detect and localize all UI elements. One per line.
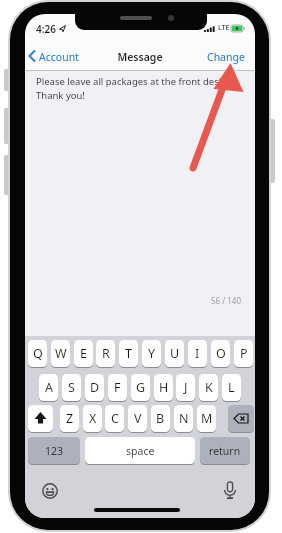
staticText: Q: [33, 345, 43, 362]
staticText: Message: [25, 50, 255, 64]
staticText: P: [240, 345, 248, 362]
button[interactable]: Z: [60, 405, 79, 432]
button[interactable]: A: [39, 374, 58, 401]
staticText: D: [90, 379, 100, 396]
button[interactable]: J: [176, 374, 195, 401]
button[interactable]: E: [74, 340, 93, 367]
button[interactable]: D: [85, 374, 104, 401]
staticText: C: [111, 410, 119, 427]
staticText: Y: [148, 345, 156, 362]
staticText: Z: [66, 410, 74, 427]
button[interactable]: C: [105, 405, 124, 432]
button[interactable]: 123: [28, 437, 80, 464]
button[interactable]: space: [85, 437, 195, 464]
button[interactable]: G: [131, 374, 150, 401]
button[interactable]: K: [199, 374, 218, 401]
staticText: U: [170, 345, 180, 362]
staticText: A: [45, 379, 53, 396]
button[interactable]: N: [174, 405, 193, 432]
button[interactable]: U: [165, 340, 184, 367]
button[interactable]: W: [51, 340, 70, 367]
button[interactable]: P: [234, 340, 253, 367]
staticText: J: [184, 379, 188, 396]
staticText: L: [228, 379, 235, 396]
button[interactable]: H: [154, 374, 173, 401]
staticText: M: [201, 410, 213, 427]
button[interactable]: Y: [142, 340, 161, 367]
button[interactable]: return: [200, 437, 250, 464]
button[interactable]: B: [151, 405, 170, 432]
staticText: X: [89, 410, 97, 427]
button[interactable]: F: [108, 374, 127, 401]
staticText: 4:26: [36, 22, 56, 36]
button[interactable]: [28, 50, 36, 62]
button[interactable]: R: [96, 340, 115, 367]
staticText: 56 / 140: [171, 295, 241, 306]
button[interactable]: [42, 483, 58, 499]
button[interactable]: I: [188, 340, 207, 367]
button[interactable]: Change: [207, 50, 245, 64]
button[interactable]: Account: [39, 50, 79, 64]
staticText: R: [102, 345, 110, 362]
staticText: Please leave all packages at the front d…: [36, 75, 227, 102]
button[interactable]: X: [83, 405, 102, 432]
button[interactable]: O: [211, 340, 230, 367]
staticText: V: [134, 410, 142, 427]
button[interactable]: [228, 405, 254, 432]
staticText: G: [136, 379, 146, 396]
staticText: E: [80, 345, 87, 362]
staticText: K: [205, 379, 213, 396]
button[interactable]: M: [197, 405, 216, 432]
staticText: space: [126, 444, 155, 458]
button[interactable]: [223, 481, 237, 500]
staticText: W: [55, 345, 67, 362]
button[interactable]: T: [119, 340, 138, 367]
staticText: B: [156, 410, 165, 427]
staticText: 123: [45, 444, 64, 458]
staticText: H: [159, 379, 169, 396]
staticText: LTE: [218, 23, 230, 33]
button[interactable]: [28, 405, 53, 432]
staticText: T: [125, 345, 132, 362]
button[interactable]: V: [128, 405, 147, 432]
staticText: I: [195, 345, 200, 362]
staticText: S: [68, 379, 75, 396]
staticText: F: [114, 379, 121, 396]
staticText: O: [216, 345, 226, 362]
staticText: return: [209, 444, 241, 458]
button[interactable]: L: [222, 374, 241, 401]
button[interactable]: S: [62, 374, 81, 401]
button[interactable]: Q: [28, 340, 47, 367]
staticText: N: [179, 410, 189, 427]
